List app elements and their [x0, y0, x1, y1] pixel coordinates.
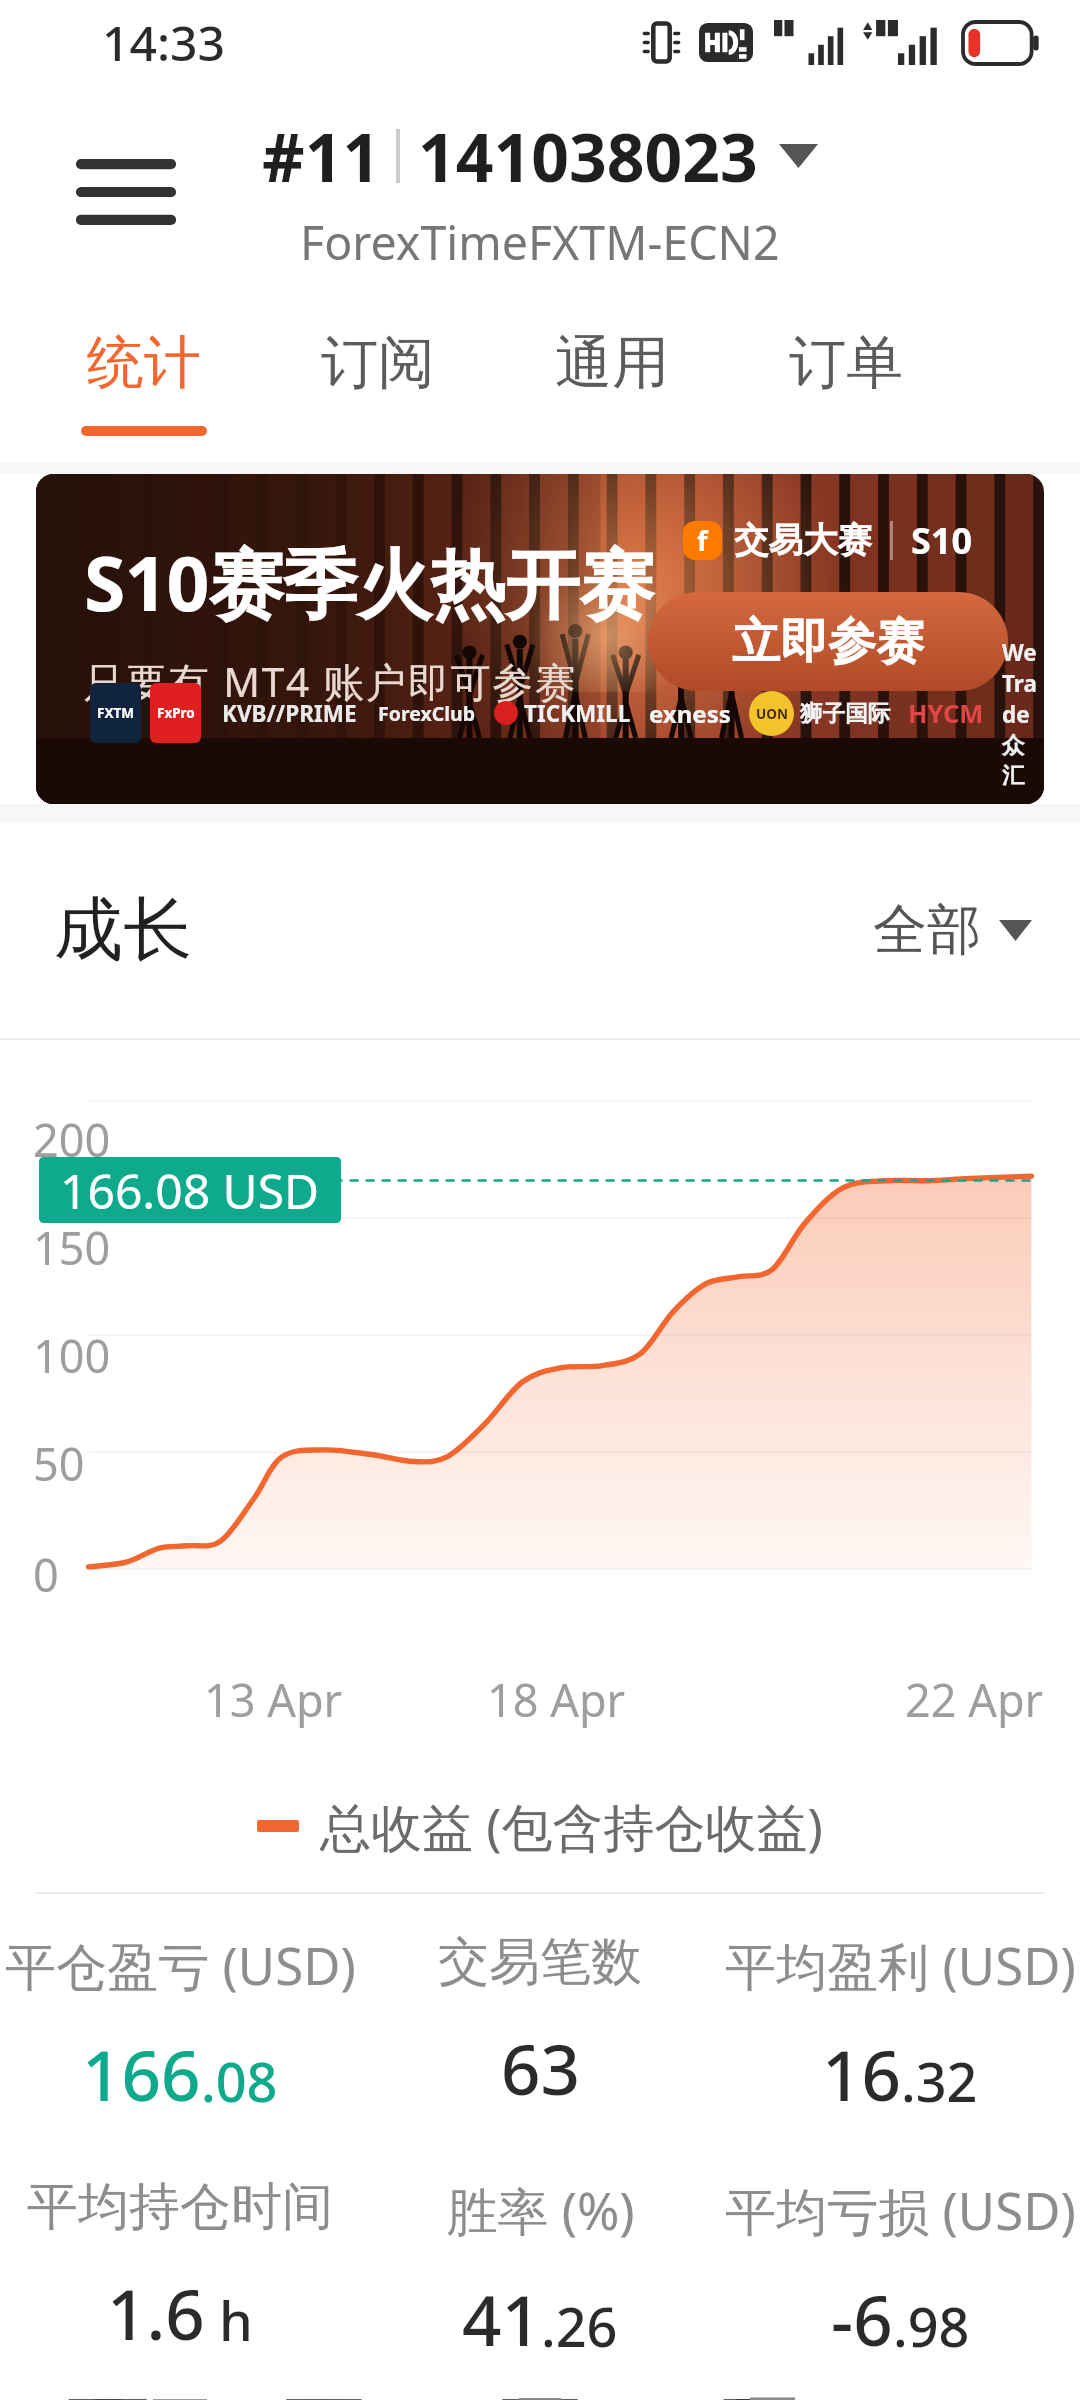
button[interactable]: 全部: [873, 896, 1032, 964]
button[interactable]: 订单: [732, 300, 960, 462]
staticText: 交易笔数: [438, 1930, 642, 1994]
staticText: 22 Apr: [905, 1669, 1044, 1730]
staticText: ForexTimeFXTM-ECN2: [300, 210, 780, 273]
staticText: 41: [462, 2272, 541, 2366]
staticText: .26: [541, 2289, 618, 2363]
staticText: 平仓盈亏 (USD): [5, 1930, 356, 2000]
staticText: 0: [33, 1544, 59, 1605]
staticText: .08: [201, 2044, 278, 2118]
staticText: .32: [901, 2044, 978, 2118]
staticText: 166.08 USD: [60, 1158, 320, 1223]
staticText: 50: [33, 1433, 85, 1494]
staticText: 通用: [555, 327, 669, 399]
staticText: FXTM: [97, 704, 134, 722]
staticText: #11: [262, 111, 381, 201]
staticText: S10: [911, 516, 973, 565]
staticText: UON: [756, 705, 788, 723]
staticText: WeTrade众汇: [1002, 637, 1044, 789]
staticText: 狮子国际: [800, 699, 890, 727]
staticText: h: [205, 2283, 253, 2357]
staticText: 总收益 (包含持仓收益): [320, 1791, 823, 1861]
button[interactable]: 立即参赛: [648, 592, 1008, 691]
staticText: 胜率 (%): [446, 2175, 635, 2245]
staticText: 立即参赛: [732, 612, 924, 672]
staticText: 200: [33, 1109, 111, 1170]
staticText: 只要有 MT4 账户即可参赛: [84, 654, 578, 709]
staticText: f: [697, 522, 708, 559]
staticText: 150: [33, 1217, 111, 1278]
staticText: 订单: [789, 327, 903, 399]
staticText: FxPro: [157, 704, 195, 722]
staticText: 平均亏损 (USD): [725, 2175, 1076, 2245]
button[interactable]: Menu: [42, 108, 210, 276]
staticText: -6: [831, 2272, 893, 2366]
staticText: KVB//PRIME: [222, 698, 357, 729]
staticText: 14:33: [102, 10, 225, 75]
staticText: 166: [82, 2027, 201, 2121]
staticText: HYCM: [908, 696, 984, 731]
staticText: 1.6: [107, 2266, 205, 2360]
staticText: 18 Apr: [487, 1669, 626, 1730]
staticText: ForexClub: [378, 700, 476, 727]
staticText: 平均盈利 (USD): [725, 1930, 1076, 2000]
staticText: 16: [822, 2027, 901, 2121]
button[interactable]: #11: [262, 111, 818, 273]
staticText: 统计: [87, 327, 201, 399]
staticText: 141038023: [418, 111, 758, 201]
staticText: 13 Apr: [204, 1669, 343, 1730]
staticText: 成长: [54, 887, 192, 974]
staticText: 63: [501, 2021, 580, 2115]
staticText: TICKMILL: [524, 698, 631, 729]
button[interactable]: 订阅: [264, 300, 492, 462]
staticText: S10赛季火热开赛: [84, 531, 654, 633]
staticText: exness: [649, 697, 731, 730]
button[interactable]: 通用: [498, 300, 726, 462]
staticText: 平均持仓时间: [27, 2175, 333, 2239]
staticText: 订阅: [321, 327, 435, 399]
staticText: 100: [33, 1325, 111, 1386]
staticText: .98: [893, 2289, 970, 2363]
button[interactable]: 统计: [30, 300, 258, 462]
button[interactable]: S10赛季火热开赛: [36, 474, 1044, 804]
staticText: 全部: [873, 896, 981, 964]
staticText: 交易大赛: [734, 519, 872, 562]
